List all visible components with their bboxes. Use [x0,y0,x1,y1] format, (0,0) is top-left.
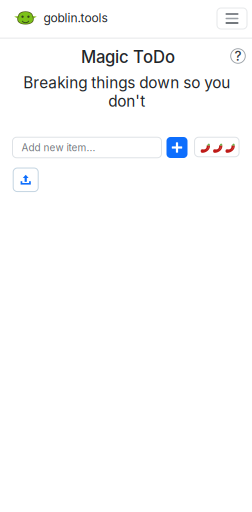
button[interactable]: Upload a list [13,168,38,192]
staticText: Magic ToDo [81,47,175,67]
staticText: Add new item... [21,141,95,154]
staticText: goblin.tools [43,11,107,25]
staticText: Breaking things down so you don't [23,73,230,110]
button[interactable]: Add item [166,137,187,158]
button[interactable]: goblin.tools [14,10,107,25]
button[interactable]: Menu [217,8,247,29]
button[interactable]: Spiciness level [195,137,239,157]
staticText: ? [234,48,241,64]
button[interactable]: Help [231,49,245,63]
